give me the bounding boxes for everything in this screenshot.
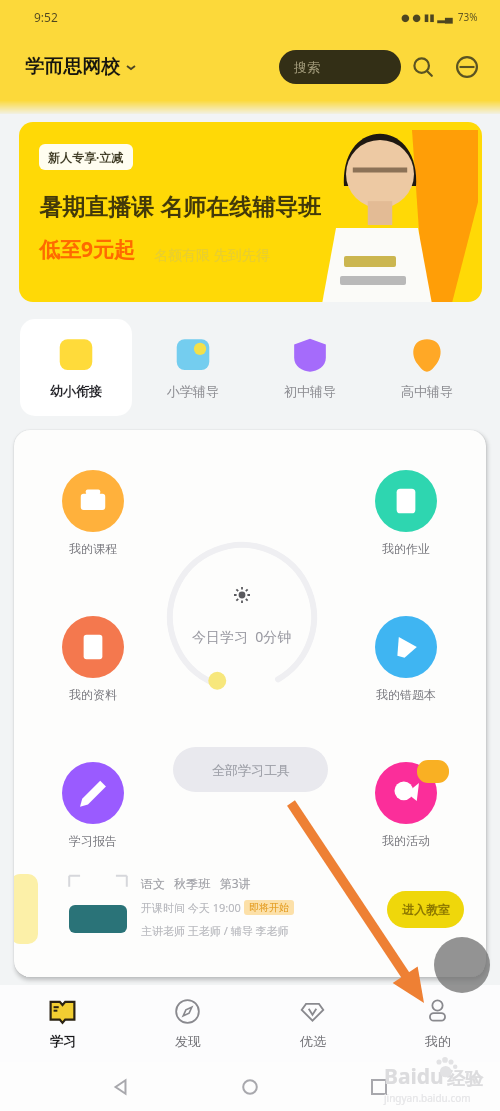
button[interactable]: Search xyxy=(408,52,438,82)
button[interactable]: 学习报告 xyxy=(50,762,136,848)
button[interactable]: 初中辅导 xyxy=(254,319,366,416)
button[interactable]: Scan code xyxy=(452,52,482,82)
button[interactable]: Back xyxy=(103,1069,139,1105)
staticText: 全部学习工具 xyxy=(212,762,290,778)
staticText: 学习 xyxy=(50,1033,76,1049)
staticText: 低至9元起 xyxy=(39,235,136,264)
staticText: Baidu xyxy=(384,1062,444,1091)
staticText: 学而思网校 xyxy=(25,55,120,79)
staticText: 我的作业 xyxy=(382,541,430,556)
button[interactable]: 我的错题本 xyxy=(363,616,449,702)
staticText: 新人专享·立减 xyxy=(48,149,124,165)
staticText: 高中辅导 xyxy=(401,383,453,399)
button[interactable]: 优选 xyxy=(250,985,375,1062)
button[interactable]: 发现 xyxy=(125,985,250,1062)
button[interactable]: 进入教室 xyxy=(387,891,464,928)
staticText: 主讲老师 王老师 / 辅导 李老师 xyxy=(141,923,289,938)
staticText: 幼小衔接 xyxy=(50,383,102,399)
button[interactable]: 高中辅导 xyxy=(371,319,483,416)
staticText: 9:52 xyxy=(34,9,58,25)
staticText: 名额有限 先到先得 xyxy=(154,245,270,264)
staticText: 发现 xyxy=(175,1033,201,1049)
button[interactable]: 全部学习工具 xyxy=(173,747,328,792)
button[interactable]: 我的课程 xyxy=(50,470,136,556)
staticText: 我的 xyxy=(425,1033,451,1049)
staticText: 我的资料 xyxy=(69,687,117,702)
staticText: 我的课程 xyxy=(69,541,117,556)
staticText: jingyan.baidu.com xyxy=(384,1091,471,1105)
button[interactable]: 新人专享·立减 xyxy=(48,149,124,165)
staticText: 进入教室 xyxy=(402,902,450,917)
staticText: 搜索 xyxy=(294,59,320,75)
button[interactable]: Recents xyxy=(361,1069,397,1105)
staticText: 暑期直播课 名师在线辅导班 xyxy=(39,190,321,221)
button[interactable]: 语文 秋季班 第3讲 xyxy=(14,866,486,956)
button[interactable]: 我的 xyxy=(375,985,500,1062)
staticText: 今日学习 0分钟 xyxy=(192,627,292,646)
button[interactable]: 搜索 xyxy=(279,50,401,84)
button[interactable]: Assistant xyxy=(434,937,490,993)
staticText: 经验 xyxy=(447,1068,483,1091)
staticText: 优选 xyxy=(300,1033,326,1049)
button[interactable]: 我的活动 xyxy=(363,762,449,848)
staticText: 我的活动 xyxy=(382,833,430,848)
button[interactable]: 我的作业 xyxy=(363,470,449,556)
button[interactable]: 我的资料 xyxy=(50,616,136,702)
staticText: 我的错题本 xyxy=(376,687,436,702)
button[interactable]: 新人专享·立减 xyxy=(19,122,482,302)
staticText: ● ● ▮▮ ▂▄ 73% xyxy=(401,10,478,24)
button[interactable]: 幼小衔接 xyxy=(20,319,132,416)
button[interactable]: 学而思网校 xyxy=(25,55,136,79)
staticText: 初中辅导 xyxy=(284,383,336,399)
staticText: 开课时间 今天 19:00 xyxy=(141,900,244,915)
button[interactable]: 学习 xyxy=(0,985,125,1062)
staticText: 即将开始 xyxy=(249,901,289,914)
button[interactable]: 小学辅导 xyxy=(137,319,249,416)
staticText: 小学辅导 xyxy=(167,383,219,399)
button[interactable]: Home xyxy=(232,1069,268,1105)
staticText: 语文 秋季班 第3讲 xyxy=(141,875,251,891)
staticText: 学习报告 xyxy=(69,833,117,848)
